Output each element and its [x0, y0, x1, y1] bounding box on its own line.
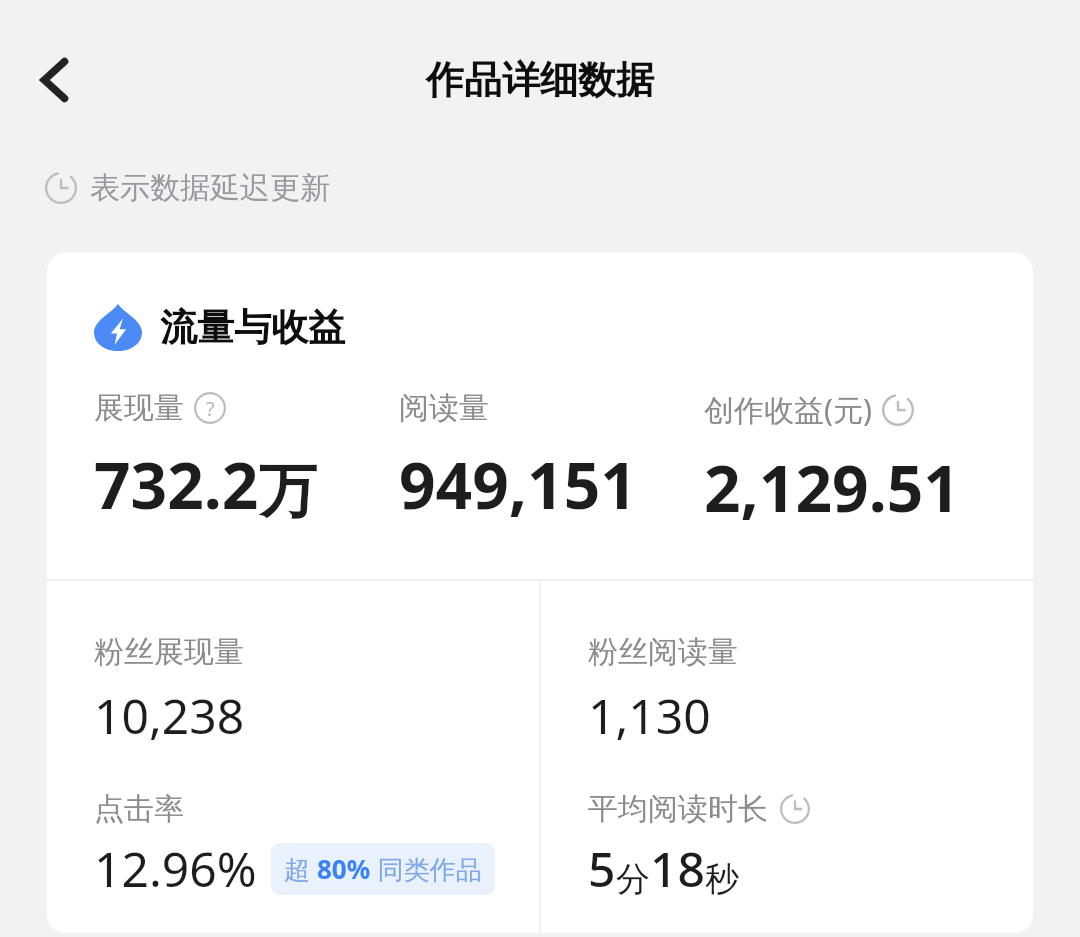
staticText: 949,151 [399, 441, 637, 528]
staticText: 粉丝展现量 [94, 633, 244, 671]
staticText: 10,238 [94, 683, 245, 748]
button[interactable]: 粉丝展现量 [94, 633, 539, 933]
staticText: 创作收益(元) [704, 389, 872, 430]
staticText: 阅读量 [399, 389, 489, 427]
staticText: 流量与收益 [160, 304, 345, 351]
staticText: 12.96% [94, 836, 257, 901]
staticText: 平均阅读时长 [588, 790, 768, 828]
staticText: 点击率 [94, 790, 184, 828]
staticText: 秒 [705, 858, 739, 901]
staticText: 732.2 [94, 441, 259, 528]
staticText: 粉丝阅读量 [588, 633, 738, 671]
staticText: 作品详细数据 [426, 56, 654, 104]
button[interactable]: Back [18, 44, 90, 116]
button[interactable]: 流量与收益 [94, 303, 345, 351]
staticText: 1,130 [588, 683, 711, 748]
staticText: 同类作品 [371, 851, 482, 887]
staticText: 80% [317, 851, 371, 886]
staticText: 18 [650, 836, 705, 901]
staticText: 表示数据延迟更新 [90, 169, 330, 207]
staticText: 超 [284, 851, 317, 887]
staticText: 5 [588, 836, 616, 901]
staticText: 展现量 [94, 389, 184, 427]
staticText: 分 [616, 858, 650, 901]
staticText: 万 [259, 455, 317, 528]
button[interactable]: 粉丝阅读量 [588, 633, 1033, 933]
staticText: ? [206, 395, 215, 422]
staticText: 2,129.51 [704, 444, 960, 531]
